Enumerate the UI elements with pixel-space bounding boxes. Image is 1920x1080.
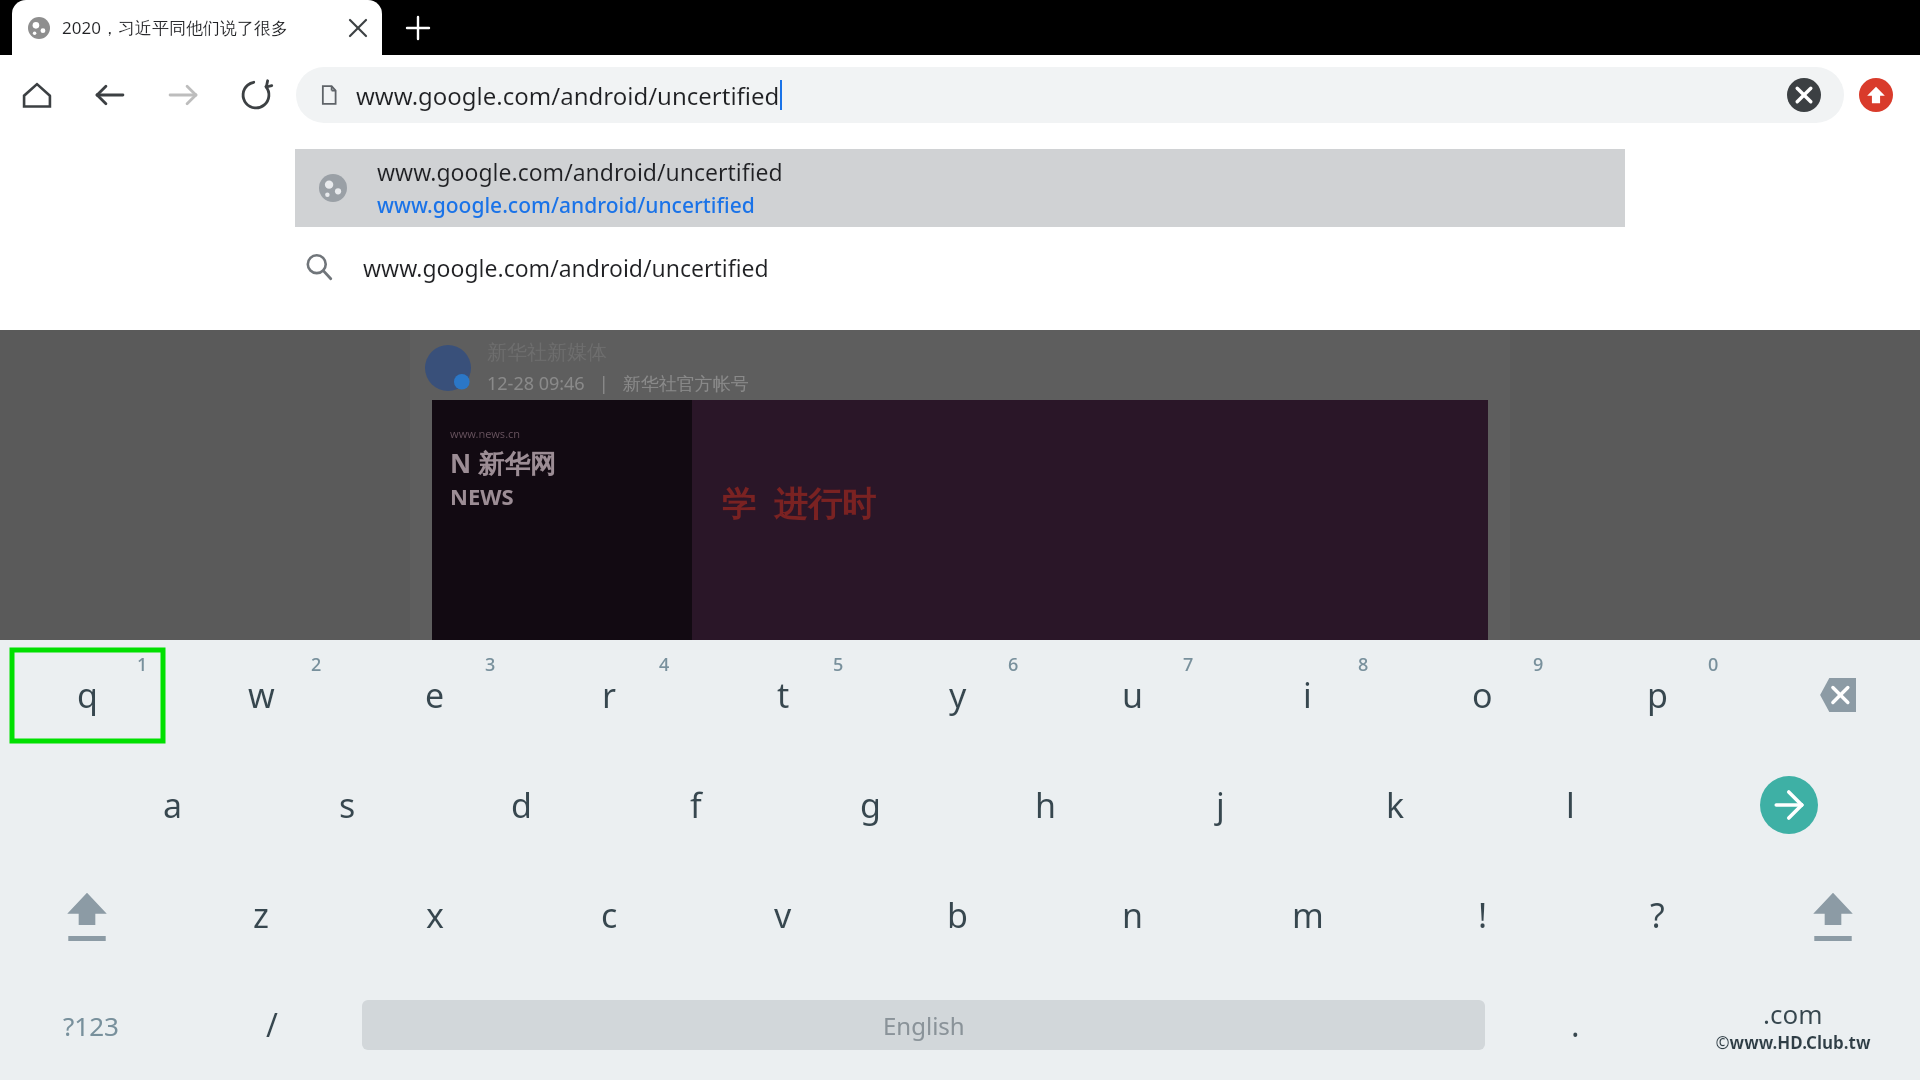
staticText: 9 (1533, 652, 1544, 677)
staticText: 3 (485, 652, 496, 677)
staticText: o (1472, 672, 1493, 718)
staticText: 1 (137, 652, 148, 677)
staticText: q (77, 672, 98, 718)
button[interactable]: Close tab (330, 0, 385, 55)
staticText: English (883, 1009, 965, 1042)
button[interactable]: m (1220, 860, 1395, 970)
button[interactable]: p (1570, 640, 1745, 750)
button[interactable]: c (522, 860, 696, 970)
button[interactable]: English (362, 1000, 1485, 1050)
staticText: 2020，习近平同他们说了很多 (62, 16, 288, 39)
staticText: u (1122, 672, 1144, 718)
staticText: 2 (311, 652, 322, 677)
button[interactable]: u (1045, 640, 1220, 750)
button[interactable]: ?123 (0, 970, 181, 1080)
button[interactable]: New tab (390, 0, 445, 55)
button[interactable]: / (181, 970, 362, 1080)
button[interactable]: j (1133, 750, 1308, 860)
staticText: a (163, 782, 183, 828)
staticText: f (690, 782, 702, 828)
button[interactable]: 2020，习近平同他们说了很多 (12, 0, 382, 55)
staticText: 7 (1183, 652, 1194, 677)
button[interactable]: h (958, 750, 1133, 860)
button[interactable]: b (870, 860, 1045, 970)
staticText: p (1647, 672, 1668, 718)
staticText: n (1122, 892, 1144, 938)
button[interactable]: www.google.com/android/uncertified (0, 227, 1920, 307)
button[interactable]: ? (1570, 860, 1745, 970)
staticText: . (1571, 1003, 1580, 1047)
button[interactable]: t (696, 640, 870, 750)
staticText: 8 (1358, 652, 1369, 677)
staticText: 4 (659, 652, 670, 677)
button[interactable]: www.google.com/android/uncertified (296, 67, 1844, 123)
staticText: 新华社新媒体 (487, 340, 607, 365)
button[interactable]: y (870, 640, 1045, 750)
button[interactable]: z (174, 860, 348, 970)
staticText: ! (1478, 892, 1488, 938)
button[interactable]: s (260, 750, 434, 860)
button[interactable]: Shift (0, 860, 174, 970)
button[interactable]: ! (1395, 860, 1570, 970)
button[interactable]: www.google.com/android/uncertified (295, 149, 1625, 227)
button[interactable]: a (86, 750, 260, 860)
button[interactable]: . (1485, 970, 1666, 1080)
staticText: y (949, 672, 967, 718)
staticText: ©www.HD.Club.tw (1715, 1031, 1871, 1054)
staticText: e (425, 672, 445, 718)
staticText: N 新华网 (450, 445, 556, 481)
staticText: g (860, 782, 881, 828)
staticText: b (947, 892, 968, 938)
staticText: www.google.com/android/uncertified (377, 156, 783, 187)
staticText: www.google.com/android/uncertified (363, 252, 769, 283)
staticText: l (1566, 782, 1575, 828)
staticText: d (511, 782, 532, 828)
staticText: r (602, 672, 617, 718)
button[interactable]: o (1395, 640, 1570, 750)
button[interactable]: x (348, 860, 522, 970)
staticText: z (253, 892, 269, 938)
button[interactable]: k (1308, 750, 1483, 860)
button[interactable]: r (522, 640, 696, 750)
staticText: s (339, 782, 356, 828)
staticText: 学 进行时 (722, 480, 876, 526)
staticText: ?123 (63, 1008, 119, 1043)
staticText: i (1303, 672, 1312, 718)
button[interactable]: f (608, 750, 783, 860)
button[interactable]: w (174, 640, 348, 750)
staticText: .com (1763, 996, 1823, 1031)
button[interactable]: e (348, 640, 522, 750)
button[interactable]: v (696, 860, 870, 970)
button[interactable]: g (783, 750, 958, 860)
button[interactable]: Clear (1786, 77, 1822, 113)
button[interactable]: q (0, 640, 174, 750)
staticText: v (774, 892, 792, 938)
button[interactable]: l (1483, 750, 1658, 860)
button[interactable]: Back (73, 55, 146, 135)
button[interactable]: n (1045, 860, 1220, 970)
staticText: x (426, 892, 444, 938)
button[interactable]: d (434, 750, 608, 860)
button[interactable]: Reload (219, 55, 292, 135)
staticText: j (1216, 782, 1225, 828)
staticText: www.news.cn (450, 426, 521, 441)
button[interactable]: Update (1854, 73, 1898, 117)
staticText: 12-28 09:46 | 新华社官方帐号 (487, 371, 749, 396)
button[interactable]: i (1220, 640, 1395, 750)
button[interactable]: Shift (1745, 860, 1920, 970)
staticText: www.google.com/android/uncertified (356, 79, 780, 112)
staticText: www.google.com/android/uncertified (377, 191, 755, 220)
staticText: / (266, 1003, 278, 1047)
staticText: ? (1650, 892, 1665, 938)
staticText: 5 (833, 652, 844, 677)
button[interactable]: Forward (146, 55, 219, 135)
button[interactable]: .com (1666, 970, 1920, 1080)
staticText: NEWS (450, 481, 514, 511)
button[interactable]: Enter (1658, 750, 1920, 860)
button[interactable]: Backspace (1745, 640, 1920, 750)
staticText: 6 (1008, 652, 1019, 677)
button[interactable]: Home (0, 55, 73, 135)
staticText: 0 (1708, 652, 1719, 677)
staticText: c (601, 892, 618, 938)
staticText: k (1386, 782, 1405, 828)
